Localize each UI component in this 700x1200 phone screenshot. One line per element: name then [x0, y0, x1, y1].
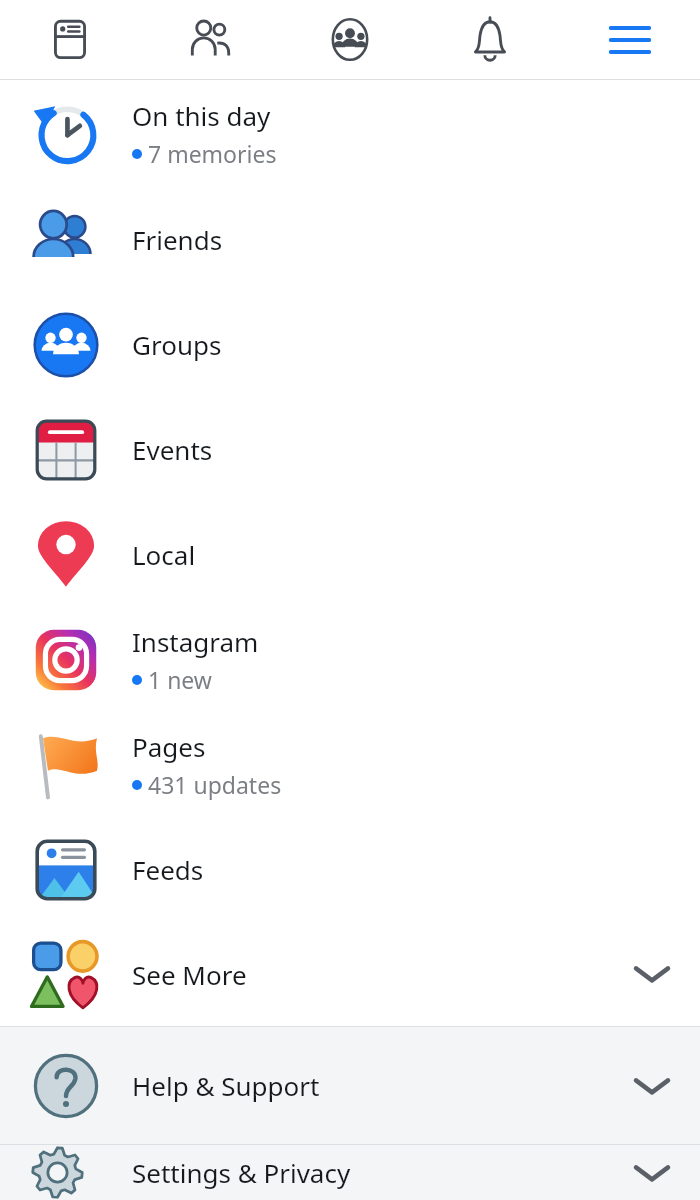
button[interactable]: Feeds	[0, 817, 700, 922]
staticText: 431 updates	[148, 769, 282, 800]
staticText: Events	[132, 432, 213, 467]
staticText: Local	[132, 537, 196, 572]
button[interactable]: On this day	[0, 80, 700, 186]
staticText: Help & Support	[132, 1068, 320, 1103]
button[interactable]: Help & Support	[0, 1027, 700, 1144]
button[interactable]: Friend Requests	[140, 0, 280, 79]
button[interactable]: Notifications	[420, 0, 560, 79]
staticText: 1 new	[148, 664, 212, 695]
button[interactable]: Groups	[0, 292, 700, 397]
staticText: Pages	[132, 729, 206, 764]
button[interactable]: Settings & Privacy	[0, 1145, 700, 1200]
button[interactable]: Events	[0, 397, 700, 502]
staticText: Friends	[132, 222, 223, 257]
staticText: Groups	[132, 327, 222, 362]
button[interactable]: Pages	[0, 712, 700, 817]
staticText: 7 memories	[148, 138, 277, 169]
staticText: Instagram	[132, 624, 259, 659]
button[interactable]: Local	[0, 502, 700, 607]
staticText: Settings & Privacy	[132, 1155, 351, 1190]
button[interactable]: Expand See More	[604, 922, 700, 1026]
button[interactable]: News Feed	[0, 0, 140, 79]
button[interactable]: Expand Help & Support	[604, 1027, 700, 1144]
staticText: See More	[132, 957, 247, 992]
button[interactable]: Expand Settings & Privacy	[604, 1145, 700, 1200]
button[interactable]: See More	[0, 922, 700, 1026]
button[interactable]: Instagram	[0, 607, 700, 712]
button[interactable]: Friends	[0, 186, 700, 292]
staticText: On this day	[132, 98, 271, 133]
staticText: Feeds	[132, 852, 204, 887]
button[interactable]: Menu	[560, 0, 700, 79]
button[interactable]: Groups	[280, 0, 420, 79]
